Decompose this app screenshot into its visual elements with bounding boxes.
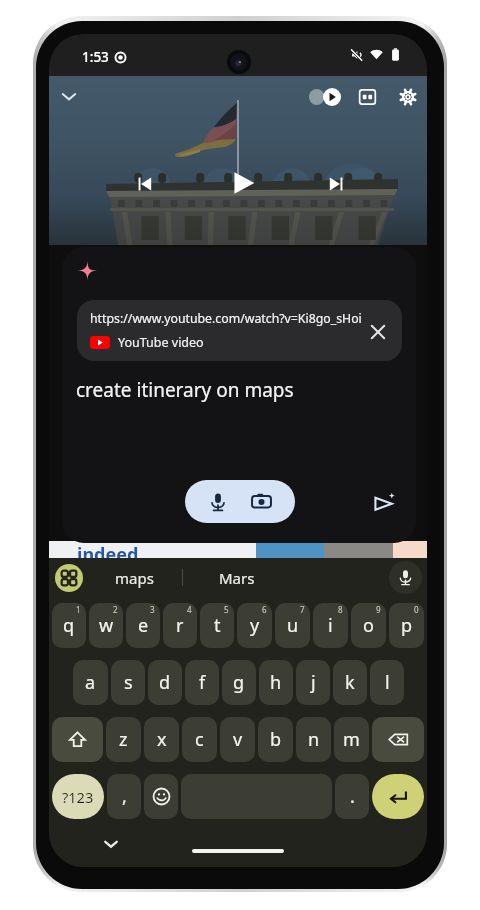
staticText: 4 <box>187 604 192 615</box>
button[interactable]: f <box>185 660 219 705</box>
button[interactable]: Enter <box>372 774 424 819</box>
button[interactable] <box>185 480 295 523</box>
staticText: y <box>250 613 260 638</box>
staticText: o <box>363 613 374 638</box>
staticText: d <box>159 670 171 695</box>
button[interactable]: s <box>111 660 145 705</box>
staticText: v <box>233 727 243 752</box>
staticText: x <box>157 727 167 752</box>
button[interactable]: q <box>52 603 86 648</box>
staticText: r <box>176 613 184 638</box>
button[interactable]: c <box>182 717 217 762</box>
button[interactable]: p <box>389 603 424 648</box>
staticText: create itinerary on maps <box>76 377 294 403</box>
staticText: 1:53 <box>82 48 109 66</box>
button[interactable]: Subtitles <box>359 89 376 105</box>
button[interactable]: Play <box>228 169 256 197</box>
staticText: i <box>328 613 333 638</box>
button[interactable]: g <box>222 660 256 705</box>
staticText: 3 <box>150 604 155 615</box>
button[interactable]: Send <box>371 490 397 516</box>
button[interactable]: maps <box>86 562 182 594</box>
staticText: f <box>199 670 206 695</box>
button[interactable]: Autoplay <box>309 88 341 106</box>
staticText: 0 <box>414 604 419 615</box>
staticText: k <box>345 670 355 695</box>
staticText: m <box>343 727 360 752</box>
staticText: Mars <box>219 568 255 588</box>
staticText: b <box>270 727 282 752</box>
button[interactable]: Hide keyboard <box>100 833 122 855</box>
button[interactable]: w <box>89 603 123 648</box>
staticText: 5 <box>224 604 229 615</box>
button[interactable]: b <box>258 717 293 762</box>
button[interactable]: a <box>73 660 108 705</box>
button[interactable]: z <box>106 717 141 762</box>
button[interactable]: Voice input <box>389 561 422 594</box>
button[interactable]: Next <box>322 170 350 198</box>
staticText: 9 <box>376 604 381 615</box>
staticText: g <box>233 670 245 695</box>
button[interactable]: t <box>200 603 234 648</box>
staticText: 7 <box>300 604 305 615</box>
staticText: j <box>311 670 316 695</box>
staticText: https://www.youtube.com/watch?v=Ki8go_sH… <box>90 310 362 327</box>
staticText: w <box>99 613 114 638</box>
staticText: maps <box>115 568 154 588</box>
staticText: u <box>287 613 299 638</box>
staticText: c <box>195 727 204 752</box>
staticText: z <box>119 727 128 752</box>
button[interactable]: Settings <box>399 88 417 106</box>
button[interactable]: Previous <box>131 170 159 198</box>
button[interactable]: , <box>107 774 141 819</box>
staticText: YouTube video <box>118 334 204 351</box>
button[interactable]: l <box>370 660 404 705</box>
button[interactable]: Mars <box>189 562 285 594</box>
button[interactable]: j <box>296 660 330 705</box>
staticText: s <box>124 670 133 695</box>
staticText: a <box>85 670 96 695</box>
staticText: 1 <box>76 604 81 615</box>
staticText: p <box>401 613 413 638</box>
button[interactable]: . <box>335 774 369 819</box>
staticText: n <box>308 727 320 752</box>
staticText: h <box>270 670 282 695</box>
button[interactable]: o <box>351 603 386 648</box>
staticText: q <box>63 613 75 638</box>
button[interactable]: Emoji <box>144 774 178 819</box>
staticText: e <box>138 613 149 638</box>
button[interactable]: m <box>334 717 369 762</box>
staticText: 2 <box>113 604 118 615</box>
button[interactable]: Apps <box>55 564 83 592</box>
button[interactable]: v <box>220 717 255 762</box>
staticText: ?123 <box>62 787 94 807</box>
staticText: . <box>350 784 355 809</box>
staticText: indeed <box>77 542 139 564</box>
button[interactable]: d <box>148 660 182 705</box>
staticText: , <box>122 784 127 809</box>
button[interactable]: Collapse <box>57 84 81 108</box>
button[interactable]: x <box>144 717 179 762</box>
staticText: 6 <box>262 604 267 615</box>
button[interactable]: ?123 <box>52 774 104 819</box>
staticText: 8 <box>338 604 343 615</box>
button[interactable]: Backspace <box>372 717 424 762</box>
button[interactable]: i <box>313 603 348 648</box>
button[interactable]: Shift <box>52 717 103 762</box>
staticText: l <box>385 670 390 695</box>
button[interactable]: k <box>333 660 367 705</box>
button[interactable]: y <box>237 603 272 648</box>
button[interactable]: u <box>275 603 310 648</box>
button[interactable]: n <box>296 717 331 762</box>
button[interactable]: r <box>163 603 197 648</box>
button[interactable]: https://www.youtube.com/watch?v=Ki8go_sH… <box>77 300 402 361</box>
button[interactable]: Remove attachment <box>366 320 390 344</box>
button[interactable]: h <box>259 660 293 705</box>
button[interactable]: e <box>126 603 160 648</box>
staticText: t <box>214 613 221 638</box>
